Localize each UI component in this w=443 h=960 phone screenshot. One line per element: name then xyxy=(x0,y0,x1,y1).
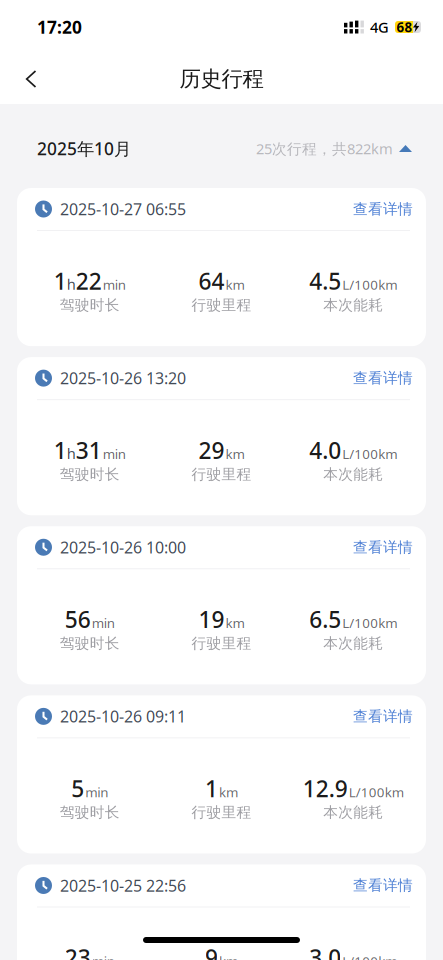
staticText: 行驶里程 xyxy=(191,634,251,652)
staticText: L/100km xyxy=(342,614,397,632)
staticText: 驾驶时长 xyxy=(60,803,120,821)
staticText: 行驶里程 xyxy=(191,803,251,821)
staticText: 22 xyxy=(76,266,102,296)
staticText: min xyxy=(92,952,115,960)
staticText: 2025-10-25 22:56 xyxy=(60,875,186,896)
staticText: h xyxy=(67,274,76,294)
staticText: km xyxy=(219,783,238,801)
button[interactable]: 查看详情 xyxy=(353,707,413,725)
staticText: 行驶里程 xyxy=(191,465,251,483)
staticText: 本次能耗 xyxy=(323,465,383,483)
button[interactable]: 查看详情 xyxy=(353,369,413,387)
staticText: 查看详情 xyxy=(353,707,413,725)
staticText: min xyxy=(92,614,115,632)
staticText: 查看详情 xyxy=(353,538,413,556)
staticText: 3.0 xyxy=(309,942,341,960)
staticText: min xyxy=(85,783,108,801)
staticText: 56 xyxy=(65,604,91,634)
staticText: 驾驶时长 xyxy=(60,634,120,652)
staticText: 68 xyxy=(396,18,412,36)
staticText: 17:20 xyxy=(37,15,82,38)
staticText: 1 xyxy=(205,773,218,803)
button[interactable]: 查看详情 xyxy=(353,876,413,894)
staticText: 2025年10月 xyxy=(37,137,131,160)
staticText: km xyxy=(225,614,244,632)
button[interactable]: 查看详情 xyxy=(353,200,413,218)
staticText: 历史行程 xyxy=(179,66,263,92)
staticText: L/100km xyxy=(342,952,397,960)
staticText: 本次能耗 xyxy=(323,634,383,652)
staticText: 行驶里程 xyxy=(191,296,251,314)
staticText: L/100km xyxy=(342,276,397,293)
staticText: 2025-10-27 06:55 xyxy=(60,198,186,220)
staticText: L/100km xyxy=(342,445,397,463)
staticText: 驾驶时长 xyxy=(60,465,120,483)
staticText: 驾驶时长 xyxy=(60,296,120,314)
staticText: 64 xyxy=(198,266,224,296)
staticText: L/100km xyxy=(349,783,404,801)
staticText: h xyxy=(67,444,76,463)
staticText: 6.5 xyxy=(309,604,341,634)
button[interactable]: 25次行程，共822km xyxy=(256,139,412,158)
staticText: 1 xyxy=(54,435,67,465)
staticText: 4.0 xyxy=(309,435,341,465)
staticText: 查看详情 xyxy=(353,876,413,894)
staticText: min xyxy=(103,276,126,293)
staticText: 查看详情 xyxy=(353,369,413,387)
staticText: 4.5 xyxy=(309,266,341,296)
staticText: km xyxy=(225,445,244,463)
button[interactable]: Back xyxy=(9,58,53,100)
staticText: 23 xyxy=(65,942,91,960)
staticText: 4G xyxy=(370,17,389,37)
staticText: min xyxy=(103,445,126,463)
staticText: 5 xyxy=(71,773,84,803)
staticText: 19 xyxy=(198,604,224,634)
staticText: 2025-10-26 13:20 xyxy=(60,367,186,389)
staticText: 9 xyxy=(205,942,218,960)
staticText: 29 xyxy=(198,435,224,465)
button[interactable]: 查看详情 xyxy=(353,538,413,556)
staticText: km xyxy=(225,276,244,293)
staticText: 25次行程，共822km xyxy=(256,139,393,158)
staticText: 31 xyxy=(76,435,102,465)
staticText: 1 xyxy=(54,266,67,296)
staticText: 查看详情 xyxy=(353,200,413,218)
staticText: 2025-10-26 10:00 xyxy=(60,537,186,558)
staticText: 2025-10-26 09:11 xyxy=(60,706,186,727)
staticText: 12.9 xyxy=(303,773,348,803)
staticText: 本次能耗 xyxy=(323,296,383,314)
staticText: km xyxy=(219,952,238,960)
staticText: 本次能耗 xyxy=(323,803,383,821)
